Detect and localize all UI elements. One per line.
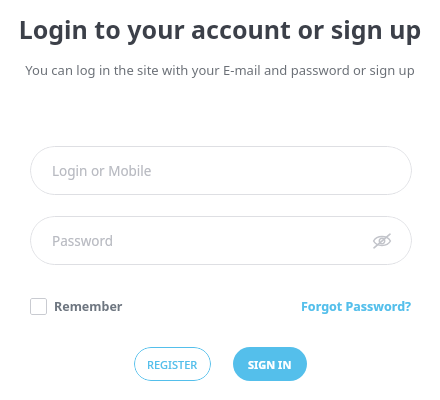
staticText: REGISTER — [147, 357, 198, 372]
staticText: Login or Mobile — [52, 162, 152, 180]
staticText: Remember — [54, 298, 123, 315]
button[interactable]: Forgot Password? — [301, 298, 412, 315]
staticText: You can log in the site with your E-mail… — [0, 61, 440, 79]
staticText: Login to your account or sign up — [0, 12, 440, 46]
staticText: Forgot Password? — [301, 298, 412, 315]
button[interactable]: SIGN IN — [233, 347, 307, 381]
staticText: SIGN IN — [248, 357, 292, 372]
button[interactable]: Password — [30, 216, 412, 265]
staticText: Password — [52, 232, 114, 250]
button[interactable]: Login or Mobile — [30, 146, 412, 195]
button[interactable]: REGISTER — [134, 347, 211, 381]
button[interactable]: Show password — [368, 227, 396, 255]
button[interactable]: Remember — [30, 298, 123, 315]
